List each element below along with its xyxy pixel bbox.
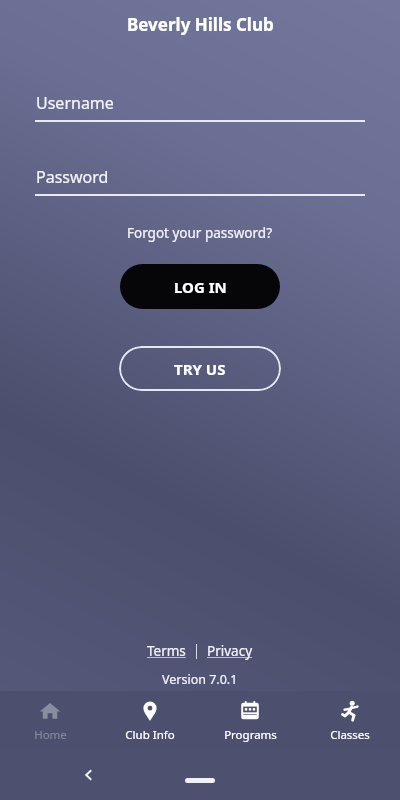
button[interactable]: TRY US (119, 346, 281, 391)
staticText: Privacy (207, 642, 253, 660)
button[interactable]: Club Info (100, 692, 200, 749)
button[interactable]: Forgot your password? (121, 222, 279, 244)
staticText: LOG IN (174, 277, 227, 297)
staticText: Password (36, 166, 109, 188)
staticText: Classes (330, 727, 370, 743)
staticText: Version 7.0.1 (162, 671, 238, 688)
staticText: Username (36, 92, 114, 114)
button[interactable]: Password (35, 166, 365, 196)
staticText: Home (34, 727, 67, 743)
staticText: Forgot your password? (127, 224, 273, 242)
button[interactable]: Back (74, 760, 104, 790)
button[interactable]: Terms (143, 640, 190, 662)
button[interactable]: Username (35, 92, 365, 122)
button[interactable]: Classes (300, 692, 400, 749)
button[interactable]: Home (0, 692, 100, 749)
staticText: Programs (224, 727, 277, 743)
button[interactable]: Privacy (203, 640, 257, 662)
button[interactable]: Home (185, 778, 215, 783)
staticText: Club Info (125, 727, 175, 743)
staticText: TRY US (174, 359, 226, 379)
button[interactable]: LOG IN (120, 264, 280, 309)
button[interactable]: Programs (200, 692, 300, 749)
staticText: Terms (147, 642, 186, 660)
staticText: Beverly Hills Club (127, 13, 274, 36)
